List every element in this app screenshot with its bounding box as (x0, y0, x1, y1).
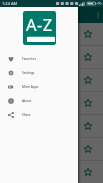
staticText: Favorites (22, 57, 36, 61)
staticText: Share (22, 113, 31, 117)
button[interactable]: Favorite (84, 99, 92, 107)
button[interactable]: Favorite (0, 69, 103, 91)
button[interactable]: Favorite (84, 76, 92, 84)
button[interactable]: Favorite (84, 30, 92, 38)
staticText: Settings (22, 71, 35, 75)
button[interactable]: More Apps (0, 80, 78, 94)
button[interactable]: Favorite (0, 46, 103, 68)
staticText: More Apps (22, 85, 39, 89)
button[interactable]: Favorite (84, 122, 92, 130)
button[interactable]: About (0, 94, 78, 108)
button[interactable]: Favorite (0, 23, 103, 45)
button[interactable]: Settings (0, 66, 78, 80)
button[interactable]: Favorite (0, 161, 103, 183)
button[interactable]: Favorites (0, 52, 78, 66)
button[interactable]: Favorite (84, 168, 92, 176)
button[interactable]: Favorite (84, 145, 92, 153)
staticText: About (22, 99, 32, 103)
staticText: A-Z (26, 13, 53, 35)
button[interactable]: Favorite (0, 92, 103, 114)
button[interactable]: More options (93, 7, 103, 23)
button[interactable]: Share (0, 108, 78, 122)
staticText: 1:24 AM (2, 1, 18, 6)
button[interactable]: Favorite (0, 115, 103, 137)
button[interactable]: Favorite (84, 53, 92, 61)
button[interactable]: Favorite (0, 138, 103, 160)
